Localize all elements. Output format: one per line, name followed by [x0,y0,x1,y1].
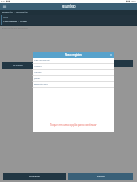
button[interactable]: Café da manhã [33,58,114,64]
staticText: ● ● 100% [126,0,136,3]
staticText: Almoço [34,65,42,68]
staticText: REFEIÇÃO · NUTRIÇÃO [2,11,28,14]
staticText: Lanche [34,71,42,74]
button[interactable]: Jantar [33,76,114,82]
staticText: Café da manhã [34,59,50,62]
button[interactable]: Lanche [33,70,114,76]
button[interactable]: Menu [2,4,7,9]
button[interactable]: Almoço [33,64,114,70]
button[interactable]: CANCELAR [3,173,66,180]
staticText: EVOLUÇÃO DA GLICEMIA [2,27,28,30]
staticText: 1.240 calorias · 12 reg. [3,20,28,23]
staticText: Jantar [34,77,41,80]
staticText: Toque em uma opção para continuar [50,123,97,127]
button[interactable] [109,60,133,67]
button[interactable]: Fechar [109,53,113,57]
staticText: Refeição livre [34,83,48,86]
button[interactable]: GLICEMIA [2,62,33,69]
button[interactable]: Refeição livre [33,82,114,88]
staticText: RELATÓRIO [62,5,76,8]
staticText: Novo registro [65,53,82,57]
staticText: SALVAR [97,175,105,178]
button[interactable]: SALVAR [68,173,133,180]
staticText: 9:41 ● ● [1,0,11,3]
staticText: GLICEMIA [13,64,23,67]
staticText: Total [3,16,8,19]
staticText: CANCELAR [29,175,40,178]
